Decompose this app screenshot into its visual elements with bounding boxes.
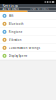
staticText: ALL SETTINGS <box>2 7 18 11</box>
button[interactable]: Customization settings <box>0 44 56 52</box>
staticText: Vibration <box>9 38 22 42</box>
staticText: Ringtone <box>9 30 23 34</box>
staticText: Bluetooth <box>9 22 24 26</box>
staticText: Wifi <box>9 14 14 18</box>
staticText: USER SETTINGS <box>30 7 48 11</box>
button[interactable]: Wifi <box>0 12 56 20</box>
staticText: Display Sperre <box>9 54 28 58</box>
button[interactable]: USER SETTINGS <box>28 8 56 11</box>
staticText: Customization settings <box>9 46 40 50</box>
button[interactable]: ALL SETTINGS <box>0 8 28 11</box>
button[interactable]: Bluetooth <box>0 20 56 28</box>
staticText: Settings <box>2 3 18 8</box>
button[interactable]: Display Sperre <box>0 52 56 60</box>
button[interactable]: Ringtone <box>0 28 56 36</box>
button[interactable]: Vibration <box>0 36 56 44</box>
